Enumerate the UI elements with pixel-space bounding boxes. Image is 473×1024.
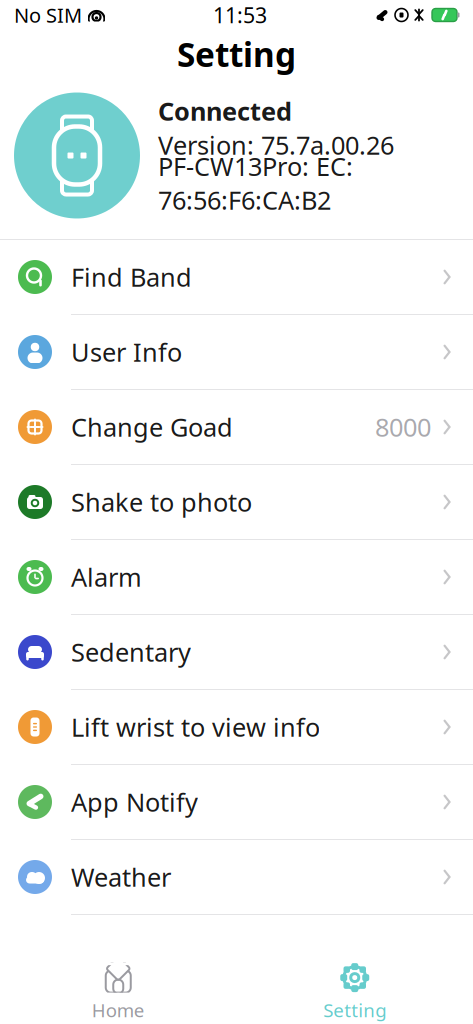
button[interactable]: Find Band — [0, 240, 473, 315]
staticText: App Notify — [71, 785, 198, 819]
staticText: Lift wrist to view info — [71, 710, 320, 744]
staticText: Change Goad — [71, 410, 233, 444]
staticText: Connected — [158, 94, 292, 128]
staticText: Home — [92, 998, 145, 1022]
staticText: Find Band — [71, 260, 192, 294]
staticText: Version: 75.7a.00.26 — [158, 128, 394, 162]
button[interactable]: Setting — [236, 957, 473, 1022]
button[interactable]: Home — [0, 957, 236, 1022]
staticText: Weather — [71, 860, 171, 894]
button[interactable]: User Info — [0, 315, 473, 390]
button[interactable]: Shake to photo — [0, 465, 473, 540]
staticText: User Info — [71, 335, 182, 369]
button[interactable]: App Notify — [0, 765, 473, 840]
button[interactable]: Sedentary — [0, 615, 473, 690]
button[interactable]: Change Goad — [0, 390, 473, 465]
staticText: PF-CW13Pro: EC:76:56:F6:CA:B2 — [158, 149, 353, 217]
staticText: No SIM — [14, 2, 82, 28]
staticText: Setting — [323, 998, 386, 1022]
staticText: 11:53 — [213, 1, 267, 29]
button[interactable]: Weather — [0, 840, 473, 915]
staticText: Setting — [177, 32, 296, 76]
staticText: 8000 — [375, 410, 431, 444]
button[interactable]: Alarm — [0, 540, 473, 615]
button[interactable]: Lift wrist to view info — [0, 690, 473, 765]
staticText: Shake to photo — [71, 485, 252, 519]
staticText: Alarm — [71, 560, 142, 594]
staticText: Sedentary — [71, 635, 191, 669]
